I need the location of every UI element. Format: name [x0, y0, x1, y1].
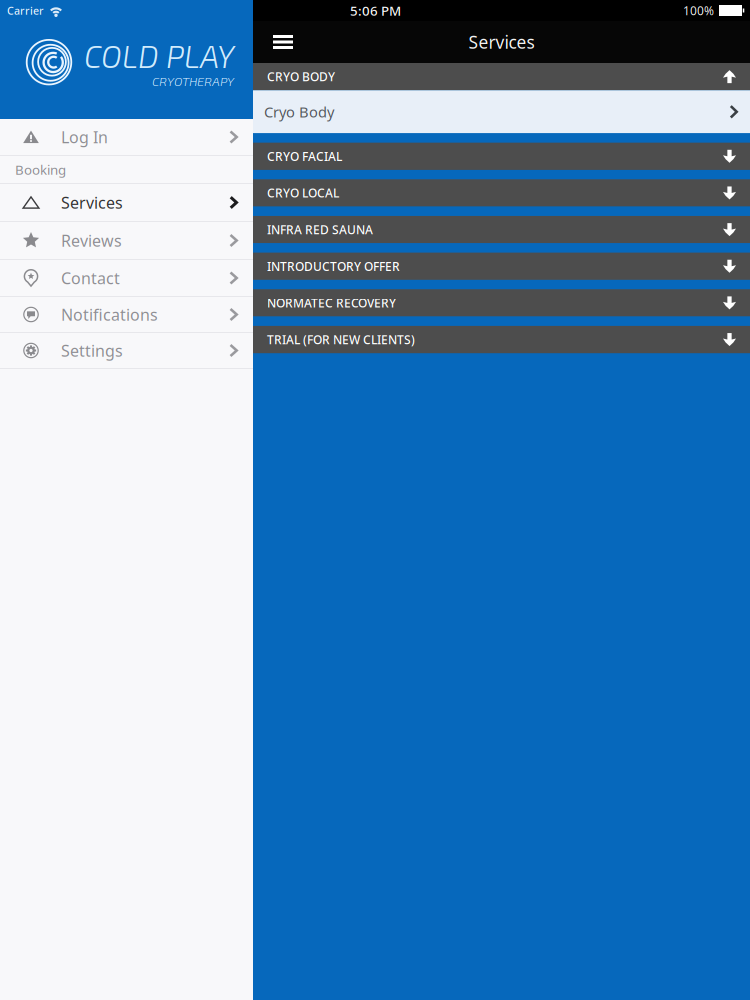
button[interactable]: Services — [0, 184, 253, 222]
button[interactable]: CRYO LOCAL — [253, 179, 750, 207]
staticText: Reviews — [61, 230, 122, 251]
button[interactable]: INFRA RED SAUNA — [253, 216, 750, 243]
button[interactable]: NORMATEC RECOVERY — [253, 289, 750, 317]
staticText: CRYO FACIAL — [267, 148, 342, 164]
staticText: 100% — [683, 2, 714, 18]
staticText: Services — [61, 192, 123, 213]
staticText: Cryo Body — [264, 102, 334, 122]
button[interactable]: Contact — [0, 260, 253, 297]
button[interactable]: TRIAL (FOR NEW CLIENTS) — [253, 326, 750, 353]
staticText: Contact — [61, 267, 120, 289]
staticText: CRYO BODY — [267, 69, 335, 85]
button[interactable]: CRYO FACIAL — [253, 143, 750, 170]
button[interactable]: Notifications — [0, 297, 253, 333]
staticText: Carrier — [7, 3, 44, 18]
staticText: Notifications — [61, 304, 158, 325]
staticText: COLD PLAY — [84, 37, 234, 74]
button[interactable]: Log In — [0, 119, 253, 156]
button[interactable]: Reviews — [0, 222, 253, 260]
button[interactable]: Settings — [0, 333, 253, 369]
staticText: Booking — [15, 161, 66, 178]
staticText: TRIAL (FOR NEW CLIENTS) — [267, 332, 415, 347]
staticText: Services — [468, 30, 534, 53]
staticText: Log In — [61, 126, 108, 148]
button[interactable]: Menu — [262, 24, 304, 60]
staticText: CRYOTHERAPY — [152, 73, 234, 89]
staticText: 5:06 PM — [350, 2, 401, 19]
button[interactable]: INTRODUCTORY OFFER — [253, 253, 750, 280]
staticText: Settings — [61, 340, 123, 361]
staticText: INFRA RED SAUNA — [267, 222, 373, 237]
button[interactable]: Cryo Body — [253, 90, 750, 133]
staticText: CRYO LOCAL — [267, 185, 339, 201]
button[interactable]: CRYO BODY — [253, 63, 750, 90]
staticText: INTRODUCTORY OFFER — [267, 258, 400, 274]
staticText: NORMATEC RECOVERY — [267, 295, 396, 311]
